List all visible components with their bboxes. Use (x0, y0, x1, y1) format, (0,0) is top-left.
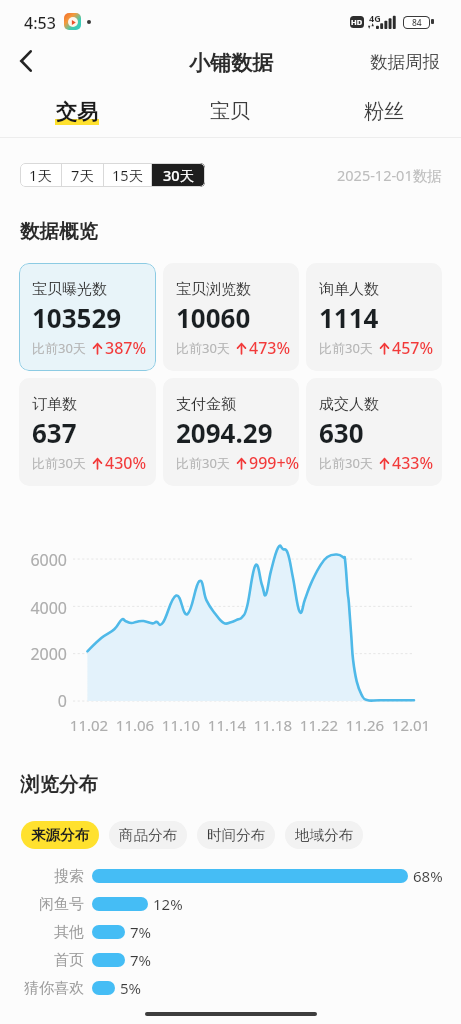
staticText: 7% (130, 922, 152, 942)
button[interactable]: 首页 (0, 946, 461, 974)
staticText: 68% (413, 866, 443, 886)
staticText: 433% (392, 452, 434, 474)
staticText: 询单人数 (319, 280, 379, 299)
staticText: 交易 (56, 99, 98, 125)
button[interactable]: 30天 (152, 163, 205, 187)
staticText: 387% (105, 337, 147, 359)
staticText: 其他 (0, 923, 84, 942)
staticText: 11.14 (202, 715, 252, 735)
staticText: 12.01 (386, 715, 436, 735)
staticText: 6000 (0, 549, 67, 571)
button[interactable]: 订单数 (19, 378, 156, 486)
staticText: 999+% (249, 452, 299, 474)
staticText: 数据概览 (20, 219, 98, 244)
staticText: 10060 (176, 300, 251, 335)
button[interactable]: 宝贝曝光数 (19, 263, 156, 371)
staticText: 4:53 (24, 12, 56, 34)
button[interactable]: 粉丝 (307, 92, 461, 137)
staticText: 5% (120, 978, 142, 998)
button[interactable]: 1天 (20, 163, 61, 187)
staticText: 粉丝 (364, 99, 404, 124)
staticText: 比前30天 (319, 454, 373, 472)
button[interactable]: 时间分布 (197, 821, 275, 849)
staticText: 11.06 (110, 715, 160, 735)
button[interactable]: 商品分布 (109, 821, 187, 849)
button[interactable]: 闲鱼号 (0, 890, 461, 918)
staticText: 地域分布 (295, 826, 353, 844)
staticText: 11.02 (64, 715, 114, 735)
staticText: 比前30天 (319, 339, 373, 357)
staticText: 11.26 (340, 715, 390, 735)
staticText: 630 (319, 415, 364, 450)
staticText: 103529 (32, 300, 122, 335)
staticText: 12% (153, 894, 183, 914)
button[interactable]: 15天 (104, 163, 151, 187)
staticText: 猜你喜欢 (0, 979, 84, 998)
button[interactable]: 支付金额 (163, 378, 299, 486)
button[interactable]: 地域分布 (285, 821, 363, 849)
staticText: 搜索 (0, 867, 84, 886)
staticText: 4G (369, 12, 381, 24)
staticText: HD (351, 17, 363, 27)
staticText: 小铺数据 (189, 50, 273, 76)
button[interactable]: 来源分布 (21, 821, 99, 849)
button[interactable]: 交易 (0, 92, 153, 137)
button[interactable]: 其他 (0, 918, 461, 946)
staticText: 宝贝 (210, 99, 250, 124)
staticText: 1天 (29, 165, 52, 185)
staticText: 商品分布 (119, 826, 177, 844)
staticText: 2025-12-01数据 (337, 165, 442, 185)
staticText: 11.18 (248, 715, 298, 735)
staticText: 成交人数 (319, 395, 379, 414)
button[interactable]: 宝贝浏览数 (163, 263, 299, 371)
staticText: 来源分布 (31, 826, 89, 844)
button[interactable]: 数据周报 (362, 45, 448, 79)
staticText: 浏览分布 (20, 772, 98, 797)
button[interactable]: 成交人数 (306, 378, 442, 486)
staticText: 比前30天 (176, 454, 230, 472)
staticText: 宝贝曝光数 (32, 280, 107, 299)
staticText: 457% (392, 337, 434, 359)
button[interactable]: 7天 (62, 163, 103, 187)
staticText: 4000 (0, 597, 67, 619)
staticText: 7% (130, 950, 152, 970)
staticText: 宝贝浏览数 (176, 280, 251, 299)
staticText: 数据周报 (370, 51, 440, 73)
button[interactable]: Back (8, 43, 44, 79)
staticText: 84 (412, 17, 422, 28)
staticText: 11.22 (294, 715, 344, 735)
staticText: 637 (32, 415, 77, 450)
staticText: 时间分布 (207, 826, 265, 844)
button[interactable]: 宝贝 (153, 92, 307, 137)
staticText: 430% (105, 452, 147, 474)
staticText: 比前30天 (32, 454, 86, 472)
staticText: 11.10 (156, 715, 206, 735)
staticText: 比前30天 (32, 339, 86, 357)
button[interactable]: 猜你喜欢 (0, 974, 461, 1002)
staticText: 订单数 (32, 395, 77, 414)
button[interactable]: 搜索 (0, 862, 461, 890)
staticText: 支付金额 (176, 395, 236, 414)
staticText: 首页 (0, 951, 84, 970)
staticText: 1114 (319, 300, 379, 335)
button[interactable]: 询单人数 (306, 263, 442, 371)
staticText: 0 (0, 690, 67, 712)
staticText: 30天 (163, 165, 195, 185)
staticText: 473% (249, 337, 291, 359)
staticText: 2000 (0, 643, 67, 665)
staticText: 7天 (71, 165, 94, 185)
staticText: 15天 (112, 165, 144, 185)
staticText: 比前30天 (176, 339, 230, 357)
staticText: 闲鱼号 (0, 895, 84, 914)
staticText: 2094.29 (176, 415, 273, 450)
